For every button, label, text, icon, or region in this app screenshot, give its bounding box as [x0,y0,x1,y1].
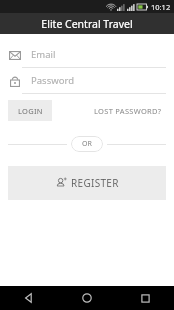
button[interactable]: LOST PASSWORD? [90,102,166,120]
button[interactable]: Password [7,68,166,94]
staticText: 10:12 [151,2,171,12]
staticText: Password [31,74,74,87]
button[interactable]: LOGIN [8,100,52,121]
staticText: OR [82,139,92,149]
staticText: LOGIN [18,106,43,116]
button[interactable]: Email [7,42,166,68]
button[interactable]: Back [0,286,58,310]
button[interactable]: Recent apps [116,286,174,310]
staticText: LOST PASSWORD? [94,106,162,116]
staticText: Email [31,48,56,61]
staticText: Elite Central Travel [41,17,133,31]
button[interactable]: REGISTER [8,166,166,200]
button[interactable]: Home [58,286,116,310]
staticText: REGISTER [71,176,119,190]
